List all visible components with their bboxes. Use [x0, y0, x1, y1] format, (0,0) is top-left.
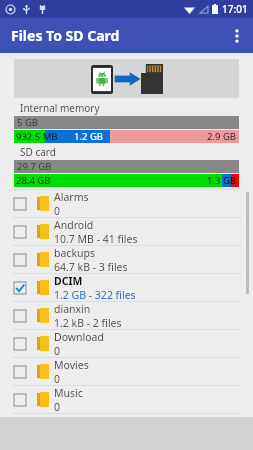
button[interactable]: Download — [0, 330, 253, 358]
button[interactable]: backups — [0, 246, 253, 274]
staticText: 28.4 GB — [16, 174, 51, 187]
staticText: 2.9 GB — [207, 130, 236, 143]
staticText: 64.7 kB - 3 files — [54, 260, 128, 273]
staticText: Music — [54, 386, 83, 400]
staticText: 0 — [54, 372, 61, 385]
button[interactable]: More options — [221, 18, 253, 53]
staticText: Alarms — [54, 190, 89, 204]
staticText: Movies — [54, 358, 89, 372]
button[interactable]: dianxin — [0, 302, 253, 330]
staticText: 1.2 kB - 2 files — [54, 316, 122, 329]
staticText: 0 — [54, 344, 61, 357]
staticText: 10.7 MB - 41 files — [54, 232, 138, 245]
button[interactable]: Movies — [0, 358, 253, 386]
staticText: backups — [54, 246, 95, 260]
button[interactable]: Android — [0, 218, 253, 246]
button[interactable]: DCIM — [0, 274, 253, 302]
staticText: 0 — [54, 204, 61, 217]
staticText: Files To SD Card — [11, 26, 120, 45]
staticText: 1.2 GB — [74, 130, 103, 143]
button[interactable]: Alarms — [0, 190, 253, 218]
staticText: 0 — [54, 400, 61, 413]
staticText: SD card — [20, 145, 56, 159]
staticText: 1.3 GB — [207, 174, 236, 187]
staticText: 932.5 MB — [16, 130, 58, 143]
staticText: 17:01 — [222, 2, 248, 16]
staticText: Download — [54, 330, 104, 344]
staticText: Android — [54, 218, 94, 232]
staticText: 5 GB — [17, 116, 38, 129]
staticText: 29.7 GB — [17, 160, 52, 173]
staticText: Internal memory — [20, 101, 100, 115]
staticText: 1.2 GB - 322 files — [54, 288, 136, 301]
button[interactable]: Music — [0, 386, 253, 414]
staticText: dianxin — [54, 302, 91, 316]
staticText: DCIM — [54, 274, 83, 288]
